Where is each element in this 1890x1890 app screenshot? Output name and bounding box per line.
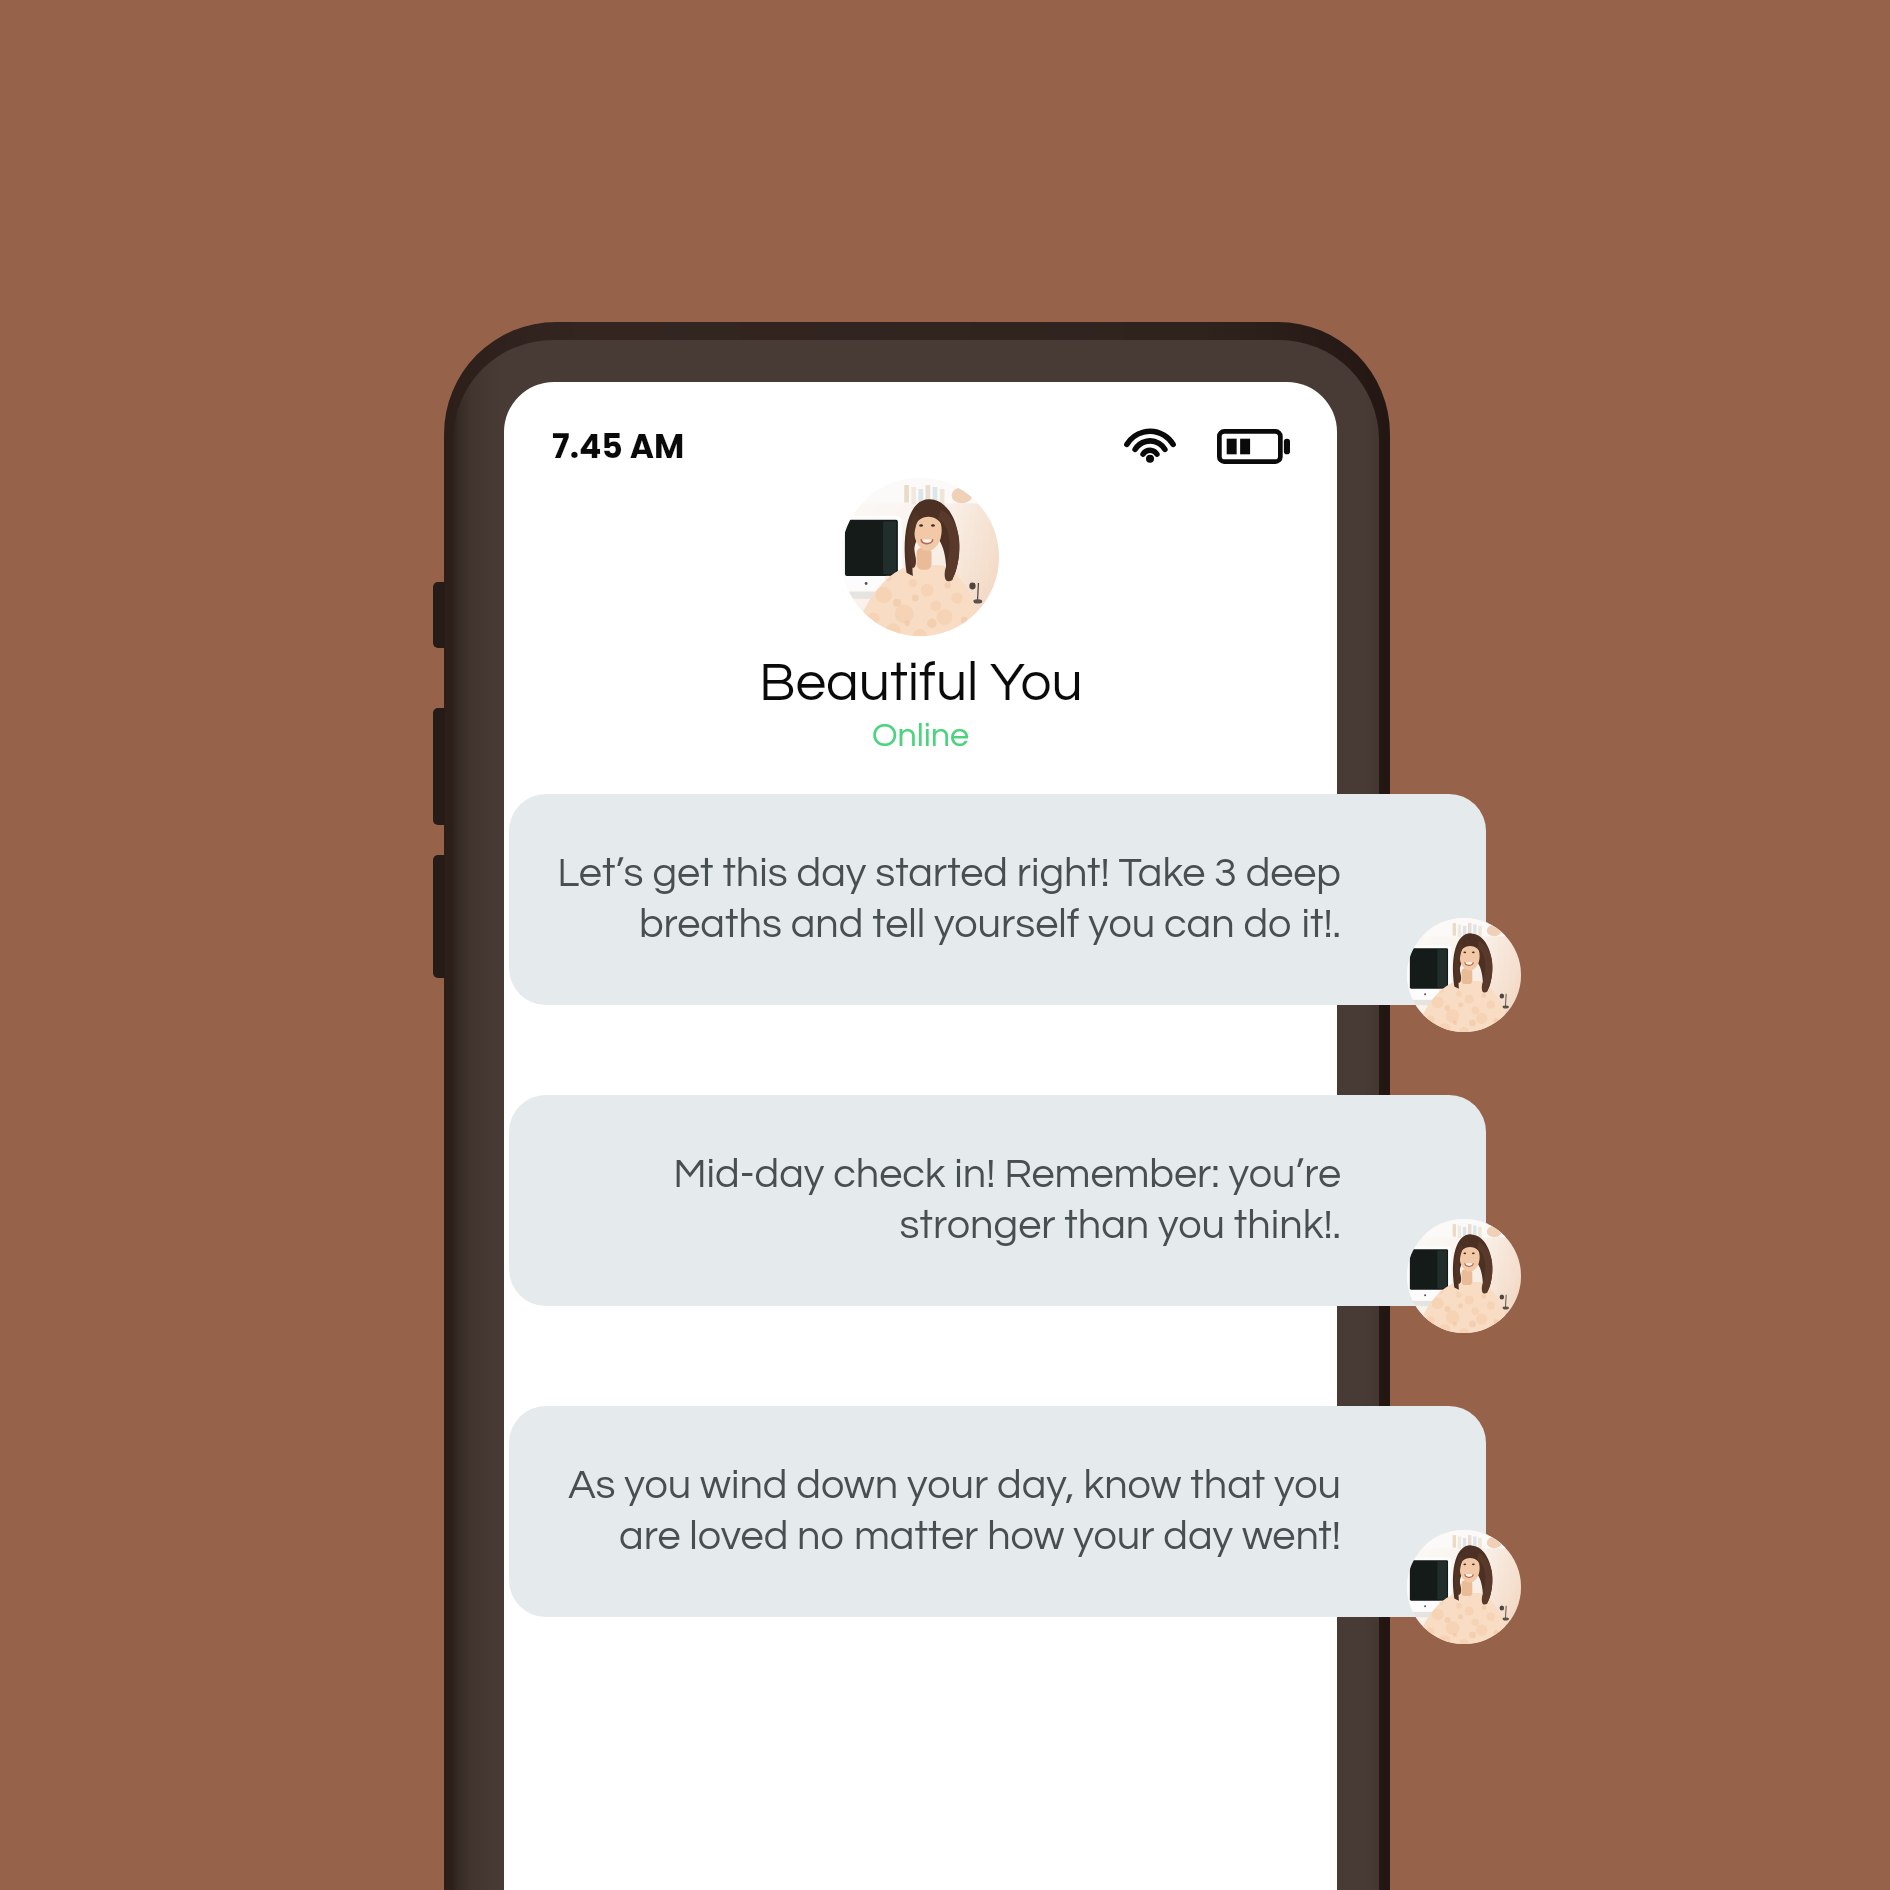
other: Battery level	[1217, 429, 1290, 464]
staticText: 7.45 AM	[552, 423, 685, 469]
button[interactable]: Beautiful You profile photo	[1407, 1219, 1521, 1333]
staticText: Beautiful You	[759, 655, 1083, 712]
button[interactable]: Beautiful You profile photo	[841, 478, 999, 636]
button[interactable]: Let’s get this day started right! Take 3…	[509, 794, 1486, 1005]
staticText: Mid-day check in! Remember: you’re stron…	[509, 1146, 1341, 1248]
staticText: Online	[872, 718, 969, 753]
staticText: As you wind down your day, know that you…	[509, 1457, 1341, 1559]
button[interactable]: As you wind down your day, know that you…	[509, 1406, 1486, 1617]
staticText: Let’s get this day started right! Take 3…	[509, 845, 1341, 947]
button[interactable]: Beautiful You profile photo	[1407, 1530, 1521, 1644]
other: Wi-Fi signal	[1129, 431, 1171, 462]
button[interactable]: Mid-day check in! Remember: you’re stron…	[509, 1095, 1486, 1306]
button[interactable]: Beautiful You profile photo	[1407, 918, 1521, 1032]
